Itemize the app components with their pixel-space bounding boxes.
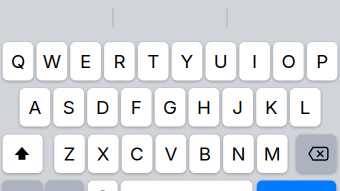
button[interactable]: D — [87, 88, 118, 126]
staticText: O — [281, 50, 295, 73]
staticText: Q — [11, 50, 25, 73]
staticText: U — [214, 50, 228, 73]
staticText: X — [97, 142, 110, 165]
staticText: B — [199, 142, 211, 165]
button[interactable]: Shift — [3, 134, 43, 173]
button[interactable]: R — [104, 42, 135, 80]
button[interactable]: J — [222, 88, 253, 126]
staticText: M — [264, 142, 281, 165]
button[interactable]: 123 — [2, 180, 42, 191]
button[interactable]: T — [138, 42, 168, 80]
staticText: K — [265, 96, 278, 119]
staticText: D — [96, 96, 109, 119]
button[interactable]: Y — [172, 42, 202, 80]
staticText: P — [316, 50, 328, 73]
button[interactable]: W — [36, 42, 67, 80]
button[interactable]: E — [70, 42, 101, 80]
staticText: A — [28, 96, 41, 119]
staticText: G — [163, 96, 177, 119]
button[interactable]: N — [223, 134, 254, 173]
button[interactable]: S — [53, 88, 84, 126]
staticText: T — [147, 50, 159, 73]
staticText: L — [300, 96, 311, 119]
button[interactable]: F — [121, 88, 152, 126]
button[interactable]: P — [307, 42, 337, 80]
button[interactable]: I — [239, 42, 270, 80]
staticText: J — [232, 96, 243, 119]
button[interactable]: V — [156, 134, 186, 173]
staticText: H — [197, 96, 211, 119]
button[interactable]: M — [257, 134, 288, 173]
staticText: F — [131, 96, 142, 119]
button[interactable]: H — [189, 88, 219, 126]
button[interactable]: O — [273, 42, 304, 80]
button[interactable]: Next keyboard — [46, 180, 83, 191]
staticText: V — [164, 142, 177, 165]
staticText: Z — [63, 142, 75, 165]
button[interactable]: Delete — [296, 134, 336, 173]
staticText: W — [43, 50, 61, 73]
staticText: I — [252, 50, 257, 73]
button[interactable]: Q — [3, 42, 33, 80]
staticText: R — [113, 50, 125, 73]
staticText: Y — [180, 50, 193, 73]
staticText: C — [130, 142, 144, 165]
button[interactable]: Search — [257, 180, 336, 191]
staticText: E — [80, 50, 91, 73]
button[interactable]: U — [205, 42, 236, 80]
button[interactable]: L — [290, 88, 321, 126]
button[interactable]: X — [88, 134, 119, 173]
button[interactable]: Z — [54, 134, 85, 173]
button[interactable]: space — [121, 180, 252, 191]
button[interactable]: C — [122, 134, 152, 173]
button[interactable]: G — [155, 88, 185, 126]
staticText: S — [63, 96, 75, 119]
staticText: N — [231, 142, 245, 165]
button[interactable]: Emoji — [88, 180, 118, 191]
button[interactable]: B — [189, 134, 220, 173]
button[interactable]: A — [20, 88, 50, 126]
button[interactable]: K — [256, 88, 287, 126]
